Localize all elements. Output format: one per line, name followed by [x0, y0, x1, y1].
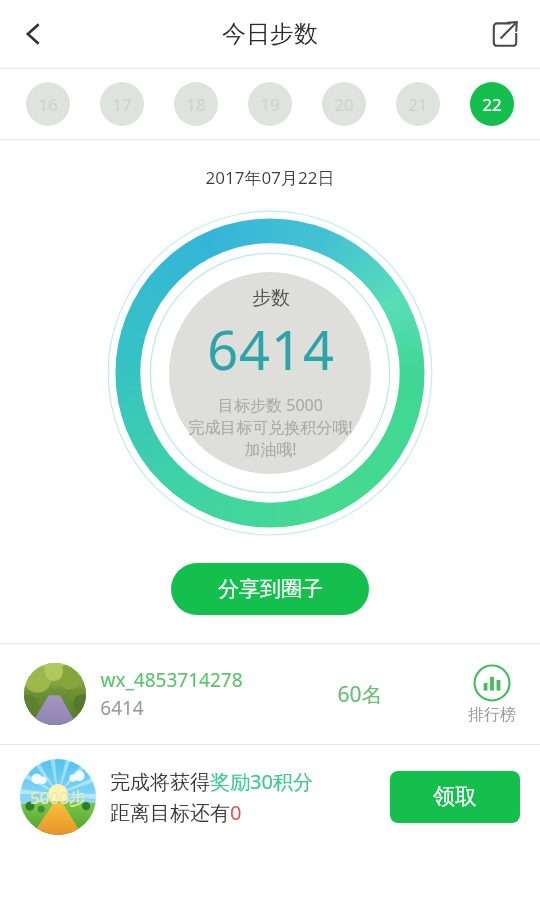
staticText: 步数	[252, 286, 290, 310]
staticText: wx_4853714278	[100, 667, 243, 693]
staticText: 目标步数 5000	[218, 394, 323, 416]
button[interactable]: 18	[174, 82, 218, 126]
staticText: 领取	[433, 783, 477, 811]
staticText: 2017年07月22日	[0, 166, 540, 189]
staticText: 分享到圈子	[218, 576, 323, 602]
button[interactable]: 16	[26, 82, 70, 126]
staticText: 20	[334, 93, 354, 116]
staticText: 今日步数	[222, 19, 318, 49]
staticText: 19	[260, 93, 280, 116]
staticText: 16	[38, 93, 58, 116]
button[interactable]: Back	[6, 7, 60, 61]
button[interactable]: 分享到圈子	[171, 563, 369, 615]
staticText: 加油哦!	[244, 438, 297, 460]
button[interactable]: 排行榜	[468, 664, 516, 725]
button[interactable]: 领取	[390, 771, 520, 823]
button[interactable]: 21	[396, 82, 440, 126]
button[interactable]: wx_4853714278	[0, 644, 540, 744]
staticText: 5000步	[30, 786, 86, 809]
staticText: 完成目标可兑换积分哦!	[188, 416, 353, 438]
button[interactable]: 20	[322, 82, 366, 126]
button[interactable]: Share	[478, 7, 532, 61]
staticText: 排行榜	[468, 705, 516, 725]
staticText: 完成将获得奖励30积分	[110, 768, 313, 795]
staticText: 22	[482, 93, 502, 116]
button[interactable]: 17	[100, 82, 144, 126]
button[interactable]: 19	[248, 82, 292, 126]
staticText: 18	[186, 93, 206, 116]
staticText: 6414	[207, 312, 335, 386]
staticText: 17	[112, 93, 132, 116]
button[interactable]: 22	[470, 82, 514, 126]
staticText: 距离目标还有0	[110, 799, 242, 826]
staticText: 21	[408, 93, 428, 116]
staticText: 6414	[100, 695, 144, 721]
staticText: 60名	[337, 680, 383, 709]
